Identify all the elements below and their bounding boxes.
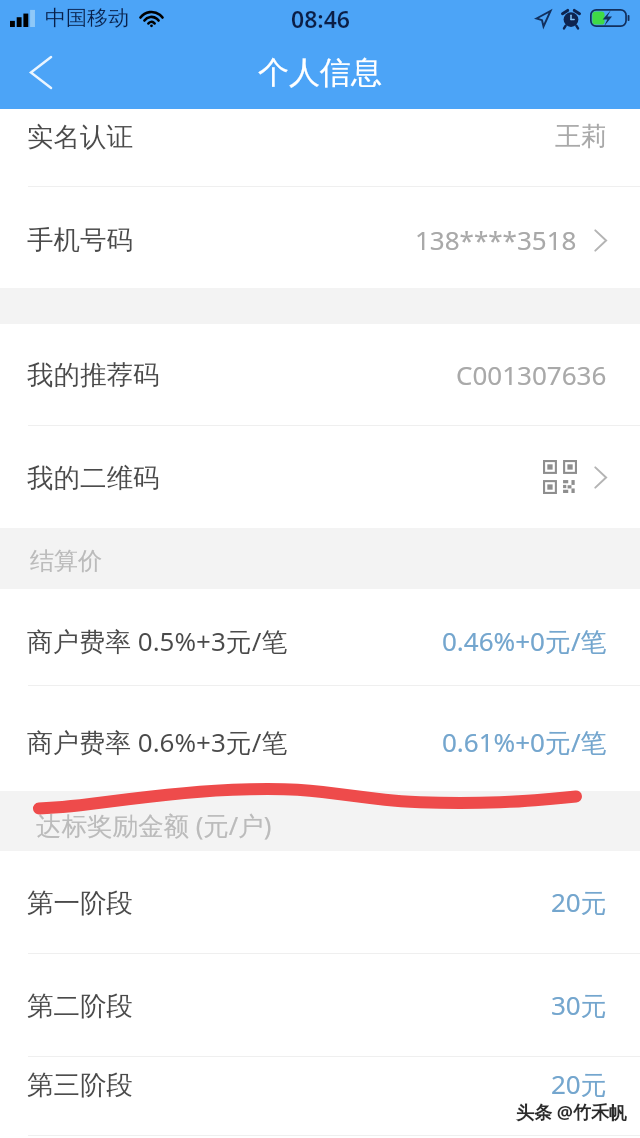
staticText: 头条 @竹禾帆 xyxy=(515,1099,626,1124)
button[interactable]: Back xyxy=(0,36,82,109)
staticText: 中国移动 xyxy=(45,5,129,31)
staticText: 商户费率 0.5%+3元/笔 xyxy=(27,623,288,659)
staticText: 头条 @竹禾帆 xyxy=(515,1101,626,1126)
staticText: 个人信息 xyxy=(258,53,382,92)
staticText: 达标奖励金额 (元/户) xyxy=(36,808,272,843)
staticText: 我的推荐码 xyxy=(27,358,160,391)
staticText: 0.46%+0元/笔 xyxy=(442,623,607,659)
button[interactable]: 第三阶段 xyxy=(0,1057,640,1136)
staticText: 138****3518 xyxy=(415,222,577,257)
button[interactable]: 第一阶段 xyxy=(0,851,640,954)
staticText: 头条 @竹禾帆 xyxy=(516,1101,627,1126)
staticText: 手机号码 xyxy=(27,223,133,256)
staticText: 头条 @竹禾帆 xyxy=(516,1100,627,1125)
staticText: 头条 @竹禾帆 xyxy=(517,1099,628,1124)
button[interactable]: 我的推荐码 xyxy=(0,324,640,426)
staticText: 实名认证 xyxy=(27,120,133,153)
staticText: 30元 xyxy=(551,987,607,1023)
staticText: 第三阶段 xyxy=(27,1068,133,1101)
button[interactable]: 第二阶段 xyxy=(0,954,640,1057)
staticText: 0.61%+0元/笔 xyxy=(442,724,607,760)
staticText: 头条 @竹禾帆 xyxy=(516,1099,627,1124)
staticText: 第一阶段 xyxy=(27,886,133,919)
button[interactable]: 商户费率 0.6%+3元/笔 xyxy=(0,686,640,791)
staticText: 王莉 xyxy=(555,120,607,153)
staticText: 头条 @竹禾帆 xyxy=(515,1100,626,1125)
staticText: 头条 @竹禾帆 xyxy=(517,1100,628,1125)
staticText: 20元 xyxy=(551,884,607,920)
button[interactable]: 手机号码 xyxy=(0,187,640,288)
button[interactable]: 我的二维码 xyxy=(0,426,640,528)
staticText: 头条 @竹禾帆 xyxy=(517,1101,628,1126)
button[interactable]: 实名认证 xyxy=(0,109,640,187)
staticText: 商户费率 0.6%+3元/笔 xyxy=(27,724,288,760)
staticText: 08:46 xyxy=(291,3,350,34)
staticText: 结算价 xyxy=(30,546,102,576)
staticText: 20元 xyxy=(551,1066,607,1102)
staticText: C001307636 xyxy=(456,357,607,392)
staticText: 第二阶段 xyxy=(27,989,133,1022)
staticText: 我的二维码 xyxy=(27,461,160,494)
button[interactable]: 商户费率 0.5%+3元/笔 xyxy=(0,589,640,686)
